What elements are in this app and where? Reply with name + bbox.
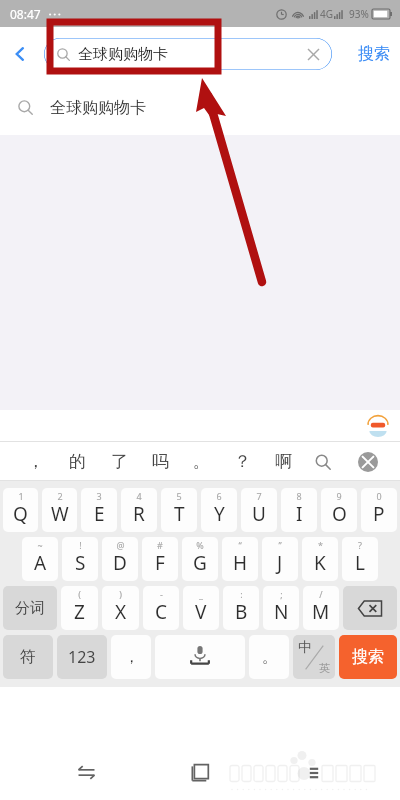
- button[interactable]: Search candidates: [308, 447, 338, 477]
- button[interactable]: %: [182, 537, 218, 581]
- button[interactable]: 3: [81, 488, 117, 532]
- staticText: ？: [234, 451, 251, 472]
- staticText: Y: [214, 501, 225, 527]
- staticText: 啊: [275, 451, 292, 472]
- button[interactable]: 的: [56, 442, 98, 481]
- staticText: 4: [136, 490, 142, 502]
- staticText: @: [116, 539, 125, 551]
- button[interactable]: 全球购购物卡: [44, 38, 332, 70]
- staticText: O: [332, 501, 347, 527]
- staticText: 5: [176, 490, 182, 502]
- staticText: M: [312, 599, 330, 625]
- button[interactable]: Space / Voice input: [155, 635, 245, 679]
- button[interactable]: 搜索: [339, 635, 397, 679]
- button[interactable]: #: [142, 537, 178, 581]
- button[interactable]: 全球购购物卡: [0, 80, 400, 135]
- staticText: _: [199, 588, 203, 600]
- button[interactable]: Assistant: [366, 414, 390, 438]
- staticText: 0: [376, 490, 382, 502]
- staticText: U: [252, 501, 266, 527]
- staticText: S: [75, 550, 86, 576]
- button[interactable]: *: [302, 537, 338, 581]
- staticText: 全球购购物卡: [50, 98, 146, 118]
- button[interactable]: _: [183, 586, 219, 630]
- staticText: A: [34, 550, 47, 576]
- button[interactable]: @: [102, 537, 138, 581]
- staticText: Z: [74, 599, 85, 625]
- staticText: #: [157, 539, 163, 551]
- staticText: 中: [298, 639, 312, 657]
- button[interactable]: 4: [121, 488, 157, 532]
- button[interactable]: 2: [42, 488, 77, 532]
- staticText: 4G: [320, 7, 333, 21]
- staticText: ): [119, 588, 122, 600]
- staticText: 08:47: [10, 6, 41, 22]
- button[interactable]: Close keyboard: [352, 446, 384, 478]
- staticText: “: [238, 539, 242, 551]
- staticText: 123: [68, 646, 96, 668]
- staticText: 6: [216, 490, 222, 502]
- button[interactable]: ”: [262, 537, 298, 581]
- button[interactable]: Menu: [286, 745, 342, 800]
- button[interactable]: 。: [181, 442, 222, 481]
- button[interactable]: 0: [361, 488, 397, 532]
- button[interactable]: 6: [201, 488, 237, 532]
- button[interactable]: 5: [161, 488, 197, 532]
- button[interactable]: ;: [263, 586, 299, 630]
- staticText: 8: [296, 490, 302, 502]
- staticText: 7: [256, 490, 262, 502]
- button[interactable]: ?: [342, 537, 378, 581]
- staticText: B: [235, 599, 248, 625]
- button[interactable]: Backspace: [343, 586, 397, 630]
- staticText: W: [51, 501, 69, 527]
- button[interactable]: Clear: [300, 41, 326, 67]
- button[interactable]: 。: [249, 635, 289, 679]
- button[interactable]: Back: [0, 27, 40, 80]
- button[interactable]: ，: [111, 635, 151, 679]
- staticText: !: [79, 539, 82, 551]
- button[interactable]: 吗: [140, 442, 181, 481]
- staticText: 符: [20, 647, 36, 667]
- button[interactable]: ): [102, 586, 139, 630]
- staticText: 分词: [15, 599, 45, 618]
- button[interactable]: “: [222, 537, 258, 581]
- staticText: 全球购购物卡: [78, 45, 168, 64]
- button[interactable]: 123: [57, 635, 107, 679]
- staticText: F: [155, 550, 165, 576]
- button[interactable]: !: [62, 537, 98, 581]
- staticText: 9: [336, 490, 342, 502]
- staticText: ”: [278, 539, 282, 551]
- staticText: :: [240, 588, 243, 600]
- button[interactable]: /: [303, 586, 339, 630]
- button[interactable]: ，: [14, 442, 56, 481]
- button[interactable]: 7: [241, 488, 277, 532]
- button[interactable]: (: [61, 586, 98, 630]
- button[interactable]: 9: [321, 488, 357, 532]
- staticText: P: [373, 501, 385, 527]
- staticText: ;: [280, 588, 283, 600]
- staticText: 了: [111, 451, 128, 472]
- button[interactable]: 1: [3, 488, 38, 532]
- button[interactable]: Chinese English toggle: [293, 635, 335, 679]
- staticText: X: [115, 599, 127, 625]
- staticText: N: [274, 599, 289, 625]
- button[interactable]: 搜索: [358, 27, 390, 80]
- staticText: 英: [319, 661, 330, 675]
- button[interactable]: -: [143, 586, 179, 630]
- button[interactable]: ~: [22, 537, 58, 581]
- staticText: *: [318, 539, 323, 551]
- staticText: D: [113, 550, 127, 576]
- button[interactable]: 符: [3, 635, 53, 679]
- button[interactable]: 了: [98, 442, 140, 481]
- staticText: (: [78, 588, 81, 600]
- button[interactable]: 8: [281, 488, 317, 532]
- staticText: R: [133, 501, 145, 527]
- button[interactable]: ？: [222, 442, 263, 481]
- staticText: /: [319, 588, 323, 600]
- button[interactable]: :: [223, 586, 259, 630]
- button[interactable]: 啊: [263, 442, 304, 481]
- button[interactable]: Back: [58, 745, 114, 800]
- staticText: E: [94, 501, 105, 527]
- button[interactable]: 分词: [3, 586, 57, 630]
- button[interactable]: Home: [172, 745, 228, 800]
